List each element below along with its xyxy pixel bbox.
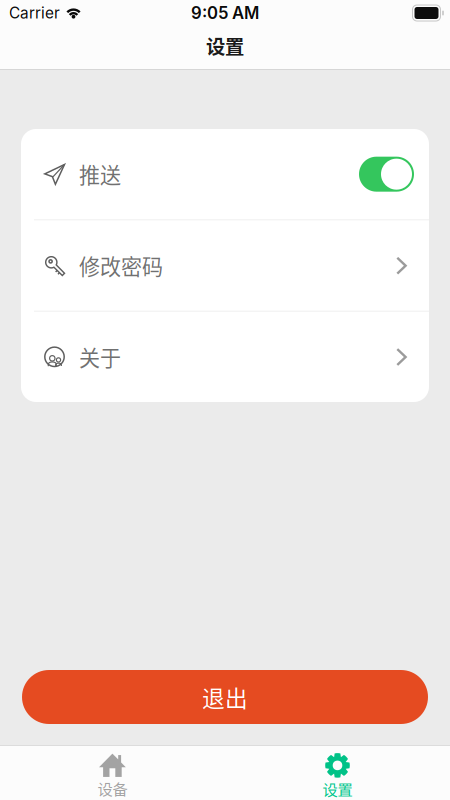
button[interactable]: 设置 [225,746,450,800]
staticText: 设置 [206,31,244,59]
staticText: 退出 [202,681,248,713]
staticText: 关于 [79,342,121,372]
staticText: 9:05 AM [191,3,259,23]
staticText: 设置 [322,778,352,800]
button[interactable]: 设备 [0,746,225,800]
staticText: 修改密码 [79,250,163,281]
staticText: Carrier [9,4,60,22]
button[interactable]: 退出 [22,670,428,724]
staticText: 推送 [79,159,121,189]
button[interactable]: 修改密码 [21,220,429,311]
staticText: 设备 [97,777,127,799]
button[interactable]: 关于 [21,312,429,402]
button[interactable]: 推送 [21,129,429,219]
